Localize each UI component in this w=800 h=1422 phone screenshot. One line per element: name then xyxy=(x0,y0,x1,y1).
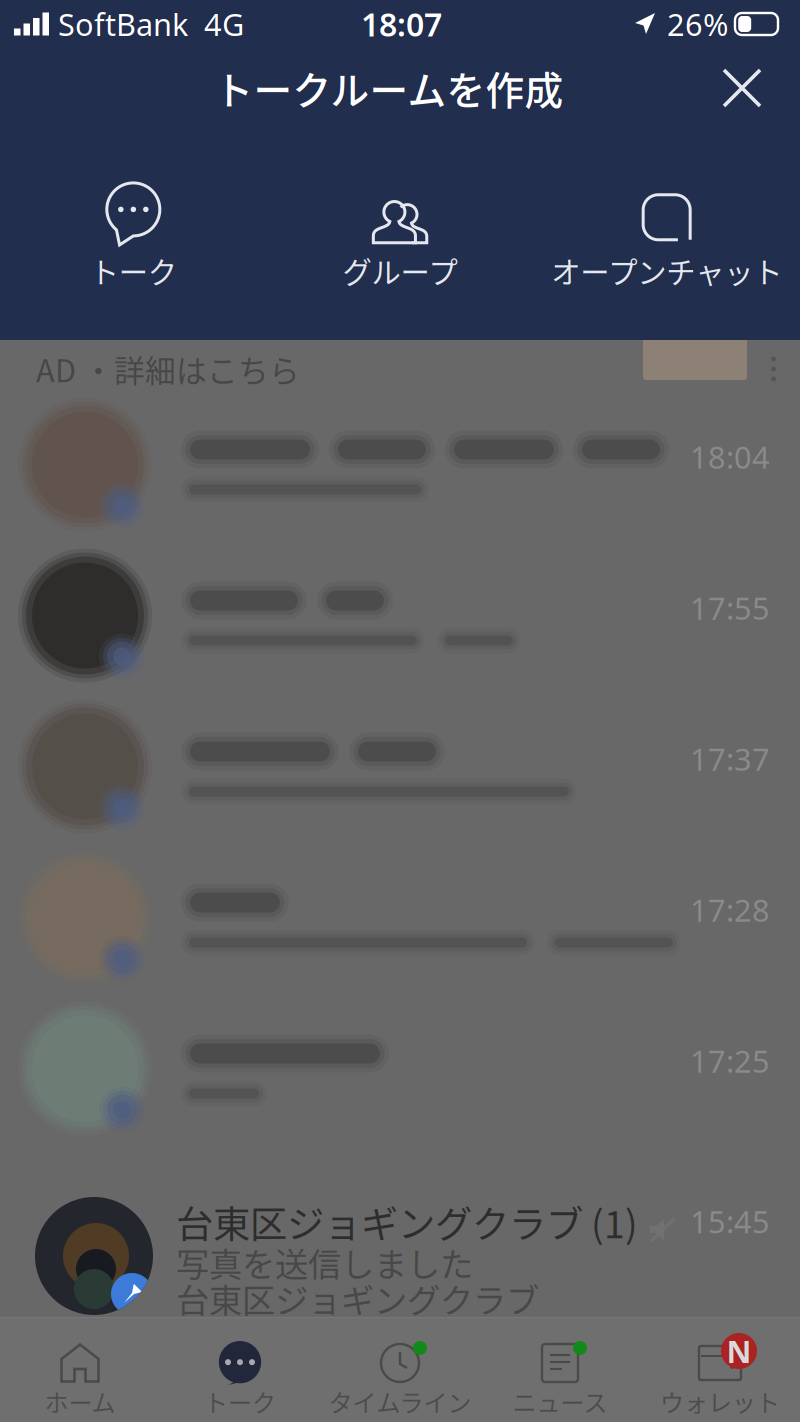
staticText: 15:45 xyxy=(690,1201,770,1242)
button[interactable]: ホーム xyxy=(0,1317,160,1422)
button[interactable]: グループ xyxy=(267,180,533,300)
button[interactable]: N xyxy=(640,1317,800,1422)
button[interactable]: トーク xyxy=(160,1317,320,1422)
button[interactable]: オープンチャット xyxy=(533,180,800,300)
staticText: N xyxy=(726,1331,751,1371)
staticText: 4G xyxy=(204,4,244,44)
staticText: 18:07 xyxy=(361,3,442,45)
staticText: タイムライン xyxy=(328,1384,471,1419)
staticText: トークルームを作成 xyxy=(214,60,563,116)
staticText: 台東区ジョギングクラブ (1) xyxy=(176,1195,638,1249)
staticText: 台東区ジョギングクラブ xyxy=(176,1274,539,1322)
staticText: オープンチャット xyxy=(551,249,782,292)
button[interactable]: 台東区ジョギングクラブ (1) xyxy=(0,1195,800,1317)
staticText: 17:55 xyxy=(690,587,770,628)
staticText: ホーム xyxy=(44,1384,115,1419)
staticText: 17:25 xyxy=(690,1040,770,1081)
staticText: ウォレット xyxy=(660,1384,780,1419)
staticText: 写真を送信しました xyxy=(176,1238,473,1286)
button[interactable]: 閉じる xyxy=(706,57,778,119)
button[interactable]: トーク xyxy=(0,180,267,300)
button[interactable]: ニュース xyxy=(480,1317,640,1422)
staticText: 26% xyxy=(667,4,728,44)
staticText: ニュース xyxy=(512,1384,607,1419)
staticText: 17:28 xyxy=(690,889,770,930)
button[interactable]: タイムライン xyxy=(320,1317,480,1422)
staticText: AD ・詳細はこちら xyxy=(36,347,300,391)
staticText: SoftBank xyxy=(58,4,188,44)
staticText: グループ xyxy=(342,249,457,292)
staticText: トーク xyxy=(204,1384,276,1419)
staticText: 17:37 xyxy=(690,738,770,779)
staticText: 18:04 xyxy=(690,436,770,477)
staticText: トーク xyxy=(90,249,177,292)
